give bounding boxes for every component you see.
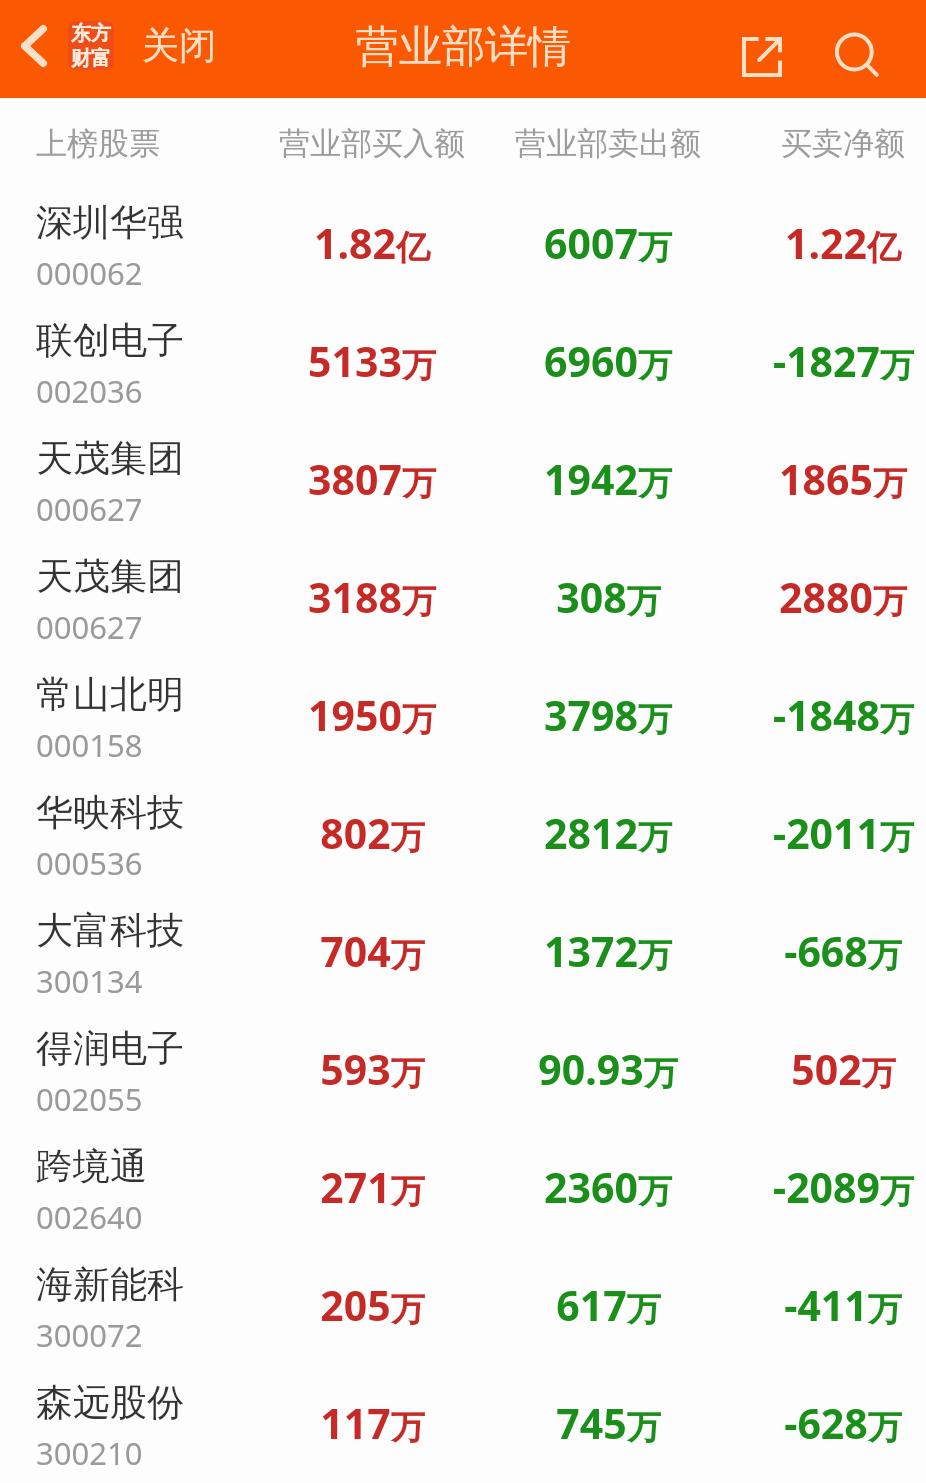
staticText: 3188万 [308,569,436,625]
staticText: 593万 [320,1041,425,1097]
staticText: 000627 [36,606,143,648]
button[interactable]: Search [822,20,890,88]
button[interactable]: 天茂集团 [0,422,926,540]
staticText: 上榜股票 [36,124,160,163]
staticText: 2880万 [779,569,907,625]
staticText: 6007万 [544,215,672,271]
staticText: 205万 [320,1277,425,1333]
staticText: -668万 [784,923,902,979]
staticText: 森远股份 [36,1379,184,1426]
button[interactable]: 天茂集团 [0,540,926,658]
button[interactable]: 常山北明 [0,658,926,776]
staticText: -411万 [784,1277,902,1333]
staticText: 000062 [36,252,143,294]
staticText: 300210 [36,1432,143,1474]
staticText: 002055 [36,1078,143,1120]
staticText: 得润电子 [36,1025,184,1072]
staticText: 90.93万 [538,1041,678,1097]
button[interactable]: Back [7,20,61,72]
staticText: 东方 [71,21,111,46]
staticText: 002036 [36,370,143,412]
button[interactable]: 华映科技 [0,776,926,894]
staticText: 300134 [36,960,143,1002]
staticText: 271万 [320,1159,425,1215]
staticText: 营业部卖出额 [515,124,701,163]
staticText: 745万 [556,1395,661,1451]
staticText: 1950万 [308,687,436,743]
staticText: 308万 [556,569,661,625]
button[interactable]: 关闭 [134,14,224,77]
staticText: 买卖净额 [781,124,905,163]
staticText: 财富 [71,46,111,70]
staticText: -2011万 [773,805,914,861]
staticText: 3798万 [544,687,672,743]
staticText: 2812万 [544,805,672,861]
button[interactable]: 得润电子 [0,1012,926,1130]
button[interactable]: Share [722,24,802,90]
staticText: 营业部买入额 [279,124,465,163]
staticText: 深圳华强 [36,199,184,246]
staticText: 营业部详情 [356,20,571,74]
button[interactable]: 联创电子 [0,304,926,422]
button[interactable]: 海新能科 [0,1248,926,1366]
staticText: -1827万 [773,333,914,389]
button[interactable]: 森远股份 [0,1366,926,1483]
staticText: 1.82亿 [314,215,430,271]
staticText: 常山北明 [36,671,184,718]
button[interactable]: 大富科技 [0,894,926,1012]
button[interactable]: 跨境通 [0,1130,926,1248]
staticText: 1.22亿 [785,215,901,271]
staticText: 1865万 [779,451,907,507]
staticText: 2360万 [544,1159,672,1215]
staticText: 1942万 [544,451,672,507]
button[interactable]: 深圳华强 [0,186,926,304]
staticText: 海新能科 [36,1261,184,1308]
staticText: 704万 [320,923,425,979]
staticText: 002640 [36,1196,143,1238]
staticText: 华映科技 [36,789,184,836]
staticText: 300072 [36,1314,143,1356]
staticText: 1372万 [544,923,672,979]
staticText: 跨境通 [36,1143,147,1190]
staticText: 天茂集团 [36,435,184,482]
staticText: 000627 [36,488,143,530]
staticText: -1848万 [773,687,914,743]
staticText: 3807万 [308,451,436,507]
staticText: 617万 [556,1277,661,1333]
staticText: 大富科技 [36,907,184,954]
staticText: 6960万 [544,333,672,389]
staticText: 117万 [320,1395,425,1451]
staticText: 5133万 [308,333,436,389]
staticText: -2089万 [773,1159,914,1215]
staticText: 502万 [791,1041,896,1097]
staticText: 联创电子 [36,317,184,364]
staticText: 天茂集团 [36,553,184,600]
staticText: 000158 [36,724,143,766]
staticText: 关闭 [142,22,216,69]
staticText: 802万 [320,805,425,861]
staticText: -628万 [784,1395,902,1451]
staticText: 000536 [36,842,143,884]
